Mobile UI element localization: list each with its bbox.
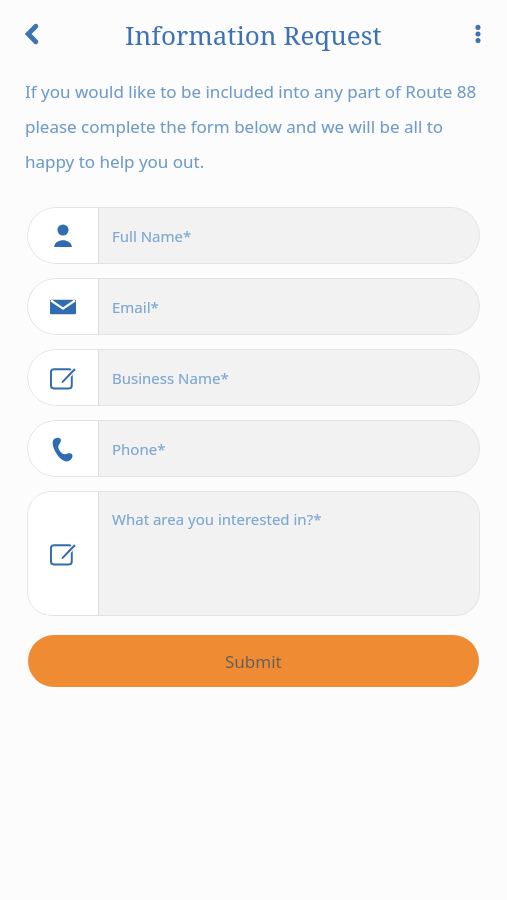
staticText: If you would like to be included into an… xyxy=(25,80,485,173)
button[interactable]: More options xyxy=(456,12,500,56)
button[interactable]: Full Name* xyxy=(27,207,480,264)
staticText: Phone* xyxy=(112,439,166,459)
button[interactable]: Business Name* xyxy=(27,349,480,406)
button[interactable]: Email* xyxy=(27,278,480,335)
staticText: Business Name* xyxy=(112,368,229,388)
button[interactable]: What area you interested in?* xyxy=(27,491,480,616)
staticText: Email* xyxy=(112,297,159,317)
staticText: Information Request xyxy=(125,17,382,52)
staticText: Full Name* xyxy=(112,226,192,246)
button[interactable]: Submit xyxy=(28,635,479,687)
staticText: What area you interested in?* xyxy=(112,509,322,529)
button[interactable]: Back xyxy=(8,10,56,58)
staticText: Submit xyxy=(225,650,282,673)
button[interactable]: Phone* xyxy=(27,420,480,477)
